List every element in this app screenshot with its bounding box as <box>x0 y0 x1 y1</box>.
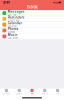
button[interactable]: Reminders <box>0 16 64 22</box>
button[interactable]: You <box>51 89 64 95</box>
button[interactable]: Alerts <box>38 89 51 95</box>
staticText: 9:41 <box>3 0 10 5</box>
staticText: Just now <box>8 13 17 16</box>
staticText: Inbox <box>26 5 37 10</box>
button[interactable]: Add <box>26 89 38 95</box>
staticText: 2 hours ago <box>8 19 19 22</box>
staticText: Alerts <box>42 92 48 95</box>
staticText: Search <box>16 92 22 95</box>
staticText: Home <box>3 92 9 95</box>
staticText: Last week <box>8 37 18 40</box>
button[interactable]: Calendar <box>0 22 64 28</box>
staticText: Monday <box>8 31 15 34</box>
staticText: Add <box>30 92 33 95</box>
staticText: Reminders <box>8 16 25 19</box>
button[interactable]: Music <box>0 33 64 39</box>
button[interactable]: Messages <box>0 10 64 16</box>
button[interactable]: Photos <box>0 28 64 33</box>
staticText: Yesterday <box>8 25 17 28</box>
staticText: Messages <box>8 10 25 13</box>
button[interactable]: Home <box>0 89 13 95</box>
staticText: Photos <box>8 27 19 31</box>
staticText: Calendar <box>8 21 22 25</box>
staticText: You <box>56 92 59 95</box>
button[interactable]: Search <box>13 89 26 95</box>
staticText: Music <box>8 33 18 37</box>
